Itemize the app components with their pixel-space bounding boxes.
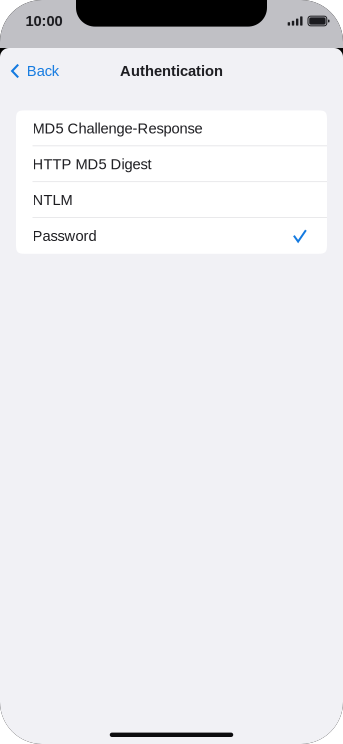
staticText: HTTP MD5 Digest	[32, 156, 151, 172]
staticText: NTLM	[32, 192, 72, 208]
staticText: Password	[32, 228, 96, 244]
button[interactable]: MD5 Challenge-Response	[16, 110, 327, 146]
button[interactable]: HTTP MD5 Digest	[16, 146, 327, 182]
button[interactable]: NTLM	[16, 182, 327, 218]
staticText: 10:00	[26, 13, 63, 29]
staticText: Authentication	[120, 63, 223, 79]
staticText: Back	[27, 63, 59, 79]
button[interactable]: Back	[0, 56, 69, 86]
staticText: MD5 Challenge-Response	[32, 120, 202, 136]
button[interactable]: Password	[16, 218, 327, 254]
